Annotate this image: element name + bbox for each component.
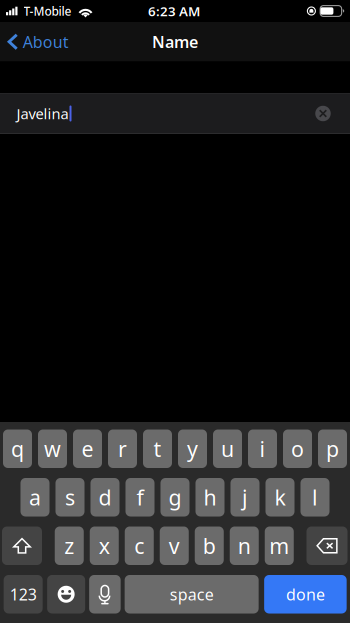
button[interactable]: h: [195, 478, 224, 516]
button[interactable]: z: [55, 526, 84, 565]
staticText: u: [221, 435, 234, 463]
button[interactable]: u: [213, 429, 242, 468]
staticText: l: [312, 483, 318, 511]
staticText: t: [153, 435, 161, 463]
button[interactable]: r: [108, 429, 137, 468]
staticText: n: [238, 532, 251, 560]
button[interactable]: space: [125, 575, 259, 613]
button[interactable]: x: [90, 526, 119, 565]
staticText: g: [168, 483, 181, 511]
staticText: done: [286, 584, 325, 605]
staticText: s: [65, 483, 75, 511]
button[interactable]: a: [20, 478, 49, 516]
button[interactable]: k: [265, 478, 294, 516]
staticText: a: [29, 483, 41, 511]
button[interactable]: b: [195, 526, 224, 565]
button[interactable]: l: [300, 478, 329, 516]
staticText: h: [203, 483, 216, 511]
button[interactable]: Emoji: [47, 575, 85, 613]
button[interactable]: Dictate: [89, 575, 121, 613]
staticText: x: [99, 532, 110, 560]
staticText: z: [64, 532, 74, 560]
staticText: y: [187, 435, 198, 463]
staticText: q: [11, 435, 24, 463]
button[interactable]: Shift: [2, 526, 42, 565]
staticText: f: [136, 483, 143, 511]
button[interactable]: g: [160, 478, 189, 516]
staticText: b: [203, 532, 216, 560]
staticText: j: [242, 483, 248, 511]
staticText: i: [259, 435, 265, 463]
button[interactable]: c: [125, 526, 154, 565]
staticText: p: [326, 435, 339, 463]
button[interactable]: 123: [4, 575, 43, 613]
staticText: 123: [10, 584, 37, 605]
button[interactable]: o: [283, 429, 312, 468]
button[interactable]: e: [73, 429, 102, 468]
button[interactable]: q: [3, 429, 32, 468]
staticText: d: [98, 483, 111, 511]
staticText: o: [291, 435, 304, 463]
button[interactable]: v: [160, 526, 189, 565]
staticText: space: [170, 584, 214, 605]
staticText: 6:23 AM: [148, 2, 200, 20]
button[interactable]: m: [265, 526, 294, 565]
button[interactable]: About: [0, 25, 77, 59]
button[interactable]: j: [230, 478, 259, 516]
button[interactable]: d: [90, 478, 119, 516]
staticText: Name: [152, 31, 198, 52]
button[interactable]: f: [125, 478, 154, 516]
staticText: r: [118, 435, 127, 463]
staticText: About: [23, 31, 69, 52]
staticText: Javelina: [16, 104, 68, 123]
button[interactable]: n: [230, 526, 259, 565]
staticText: e: [81, 435, 93, 463]
button[interactable]: p: [318, 429, 347, 468]
button[interactable]: y: [178, 429, 207, 468]
button[interactable]: Delete: [306, 526, 347, 565]
staticText: v: [169, 532, 180, 560]
staticText: T-Mobile: [23, 3, 71, 19]
staticText: m: [269, 532, 289, 560]
button[interactable]: done: [264, 575, 347, 613]
staticText: k: [274, 483, 285, 511]
staticText: c: [134, 532, 144, 560]
button[interactable]: s: [55, 478, 84, 516]
staticText: w: [44, 435, 61, 463]
button[interactable]: Clear text: [312, 102, 334, 124]
button[interactable]: t: [143, 429, 172, 468]
button[interactable]: w: [38, 429, 67, 468]
button[interactable]: i: [248, 429, 277, 468]
